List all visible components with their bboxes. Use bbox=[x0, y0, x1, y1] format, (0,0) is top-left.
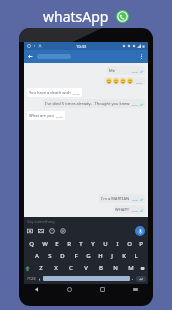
button[interactable]: A bbox=[30, 252, 43, 260]
button[interactable]: I've died 5 times already... Thought you… bbox=[43, 99, 145, 108]
staticText: H bbox=[98, 252, 103, 260]
button[interactable]: More options bbox=[138, 53, 145, 60]
button[interactable]: Gallery bbox=[38, 228, 44, 234]
button[interactable]: M bbox=[123, 264, 138, 272]
staticText: J bbox=[111, 252, 113, 260]
staticText: 01:22 bbox=[73, 92, 80, 95]
staticText: What are you bbox=[29, 113, 54, 118]
staticText: X bbox=[54, 264, 58, 272]
button[interactable]: What are you bbox=[27, 111, 65, 120]
button[interactable]: Enter bbox=[136, 276, 146, 282]
button[interactable]: K bbox=[118, 252, 130, 260]
staticText: V bbox=[84, 264, 88, 272]
staticText: K bbox=[122, 252, 126, 260]
button[interactable]: Recents bbox=[99, 286, 106, 293]
button[interactable]: F bbox=[69, 252, 82, 260]
staticText: Y bbox=[91, 240, 95, 248]
staticText: L bbox=[134, 252, 138, 260]
button[interactable]: ?123 bbox=[26, 276, 37, 281]
staticText: 01:21 bbox=[132, 103, 139, 106]
button[interactable]: W bbox=[38, 240, 51, 248]
staticText: D bbox=[60, 252, 65, 260]
staticText: 01:22 bbox=[56, 115, 63, 118]
button[interactable]: I bbox=[111, 240, 123, 248]
staticText: N bbox=[113, 264, 118, 272]
button[interactable]: X bbox=[48, 264, 63, 272]
staticText: F bbox=[74, 252, 78, 260]
button[interactable]: 04:22 bbox=[104, 77, 145, 85]
staticText: 01:21 bbox=[132, 209, 139, 212]
button[interactable]: Emoji bbox=[49, 228, 55, 234]
staticText: U bbox=[103, 240, 108, 248]
button[interactable]: Back bbox=[33, 286, 40, 293]
staticText: A bbox=[35, 252, 39, 260]
button[interactable]: Q bbox=[25, 240, 38, 248]
button[interactable]: You have a death wish bbox=[27, 88, 82, 97]
button[interactable]: H bbox=[94, 252, 106, 260]
button[interactable]: Send voice message bbox=[135, 226, 145, 236]
button[interactable]: S bbox=[43, 252, 56, 260]
button[interactable]: I'm a MARTIAN bbox=[99, 194, 145, 203]
staticText: . bbox=[132, 275, 134, 282]
button[interactable]: N bbox=[108, 264, 123, 272]
button[interactable]: V bbox=[78, 264, 93, 272]
button[interactable]: Shift bbox=[25, 266, 34, 271]
staticText: E bbox=[55, 240, 59, 248]
button[interactable]: Camera bbox=[27, 228, 33, 234]
button[interactable]: Space bbox=[43, 276, 130, 281]
staticText: Q bbox=[29, 240, 34, 248]
staticText: whatsApp bbox=[43, 7, 109, 26]
button[interactable]: D bbox=[56, 252, 69, 260]
staticText: I bbox=[116, 240, 119, 248]
staticText: 01:21 bbox=[132, 198, 139, 201]
button[interactable]: O bbox=[123, 240, 135, 248]
button[interactable]: G bbox=[82, 252, 94, 260]
button[interactable]: Backspace bbox=[138, 266, 147, 271]
button[interactable]: Y bbox=[87, 240, 99, 248]
staticText: You have a death wish bbox=[29, 90, 71, 95]
button[interactable]: U bbox=[99, 240, 111, 248]
staticText: R bbox=[67, 240, 71, 248]
staticText: WHAT!!! bbox=[115, 207, 130, 212]
staticText: M bbox=[128, 264, 134, 272]
staticText: O bbox=[127, 240, 132, 248]
staticText: S bbox=[48, 252, 52, 260]
staticText: Say something bbox=[27, 219, 55, 224]
staticText: Me bbox=[109, 68, 115, 73]
button[interactable]: . bbox=[130, 275, 136, 282]
staticText: T bbox=[79, 240, 83, 248]
staticText: C bbox=[69, 264, 73, 272]
button[interactable]: B bbox=[93, 264, 108, 272]
staticText: 01:21 bbox=[132, 70, 139, 73]
button[interactable]: Screenshot bbox=[132, 286, 139, 293]
staticText: 04:22 bbox=[136, 81, 143, 84]
staticText: ?123 bbox=[27, 276, 36, 281]
button[interactable]: Settings bbox=[60, 228, 66, 234]
button[interactable]: Back bbox=[27, 53, 34, 60]
staticText: , bbox=[39, 275, 41, 282]
staticText: W bbox=[42, 240, 48, 248]
button[interactable]: L bbox=[130, 252, 142, 260]
staticText: B bbox=[99, 264, 103, 272]
staticText: I'm a MARTIAN bbox=[101, 196, 130, 201]
button[interactable]: WHAT!!! bbox=[113, 205, 145, 214]
button[interactable]: R bbox=[63, 240, 75, 248]
button[interactable]: Z bbox=[34, 264, 48, 272]
button[interactable]: Home bbox=[66, 286, 73, 293]
staticText: P bbox=[139, 240, 143, 248]
button[interactable]: E bbox=[51, 240, 63, 248]
staticText: 10:33 bbox=[76, 44, 87, 49]
staticText: I've died 5 times already... Thought you… bbox=[45, 101, 130, 106]
button[interactable]: , bbox=[37, 275, 43, 282]
button[interactable]: C bbox=[63, 264, 78, 272]
button[interactable]: T bbox=[75, 240, 87, 248]
button[interactable]: P bbox=[135, 240, 147, 248]
button[interactable]: Me bbox=[107, 66, 145, 75]
button[interactable]: whatsApp bbox=[43, 7, 129, 26]
button[interactable]: J bbox=[106, 252, 118, 260]
staticText: Z bbox=[39, 264, 43, 272]
staticText: G bbox=[86, 252, 91, 260]
other: WhatsApp logo bbox=[116, 10, 129, 23]
